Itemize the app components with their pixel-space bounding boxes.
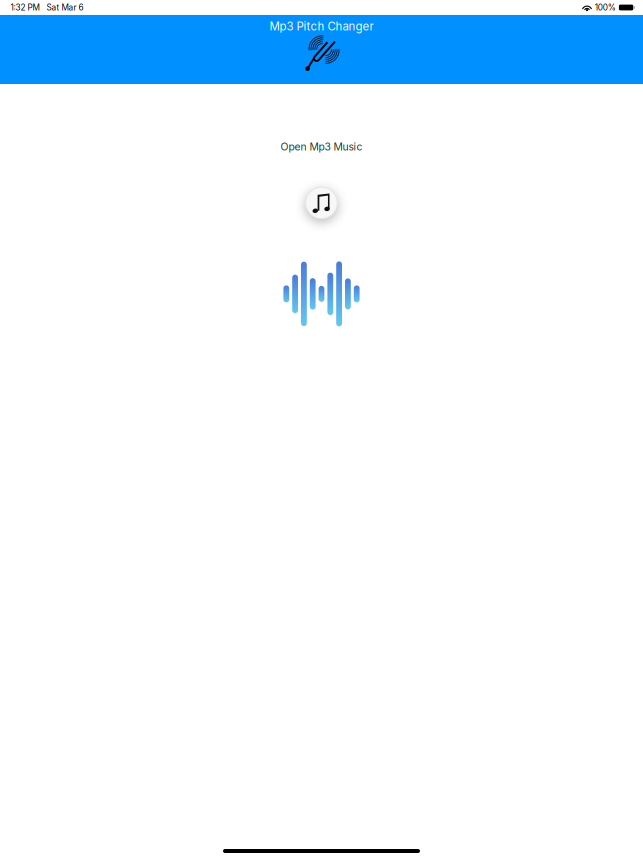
staticText: Open Mp3 Music: [280, 140, 362, 153]
staticText: Sat Mar 6: [46, 2, 83, 12]
button[interactable]: Open Mp3 Music: [299, 181, 343, 225]
staticText: 1:32 PM: [10, 2, 39, 12]
staticText: 100%: [595, 2, 616, 12]
staticText: Mp3 Pitch Changer: [269, 19, 373, 33]
